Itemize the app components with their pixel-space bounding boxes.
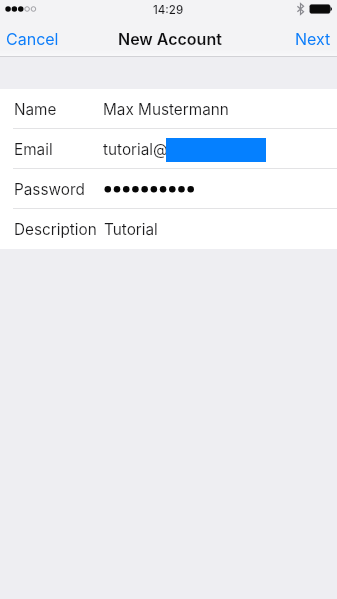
- button[interactable]: Description: [0, 209, 337, 249]
- button[interactable]: Name: [0, 89, 337, 129]
- other: Cellular signal strength: [0, 0, 60, 20]
- staticText: Tutorial: [104, 220, 158, 239]
- staticText: Next: [295, 29, 331, 48]
- button[interactable]: Email: [0, 129, 337, 169]
- other: Bluetooth and battery status: [277, 0, 337, 20]
- staticText: Email: [14, 140, 53, 159]
- staticText: Cancel: [6, 29, 59, 48]
- staticText: tutorial@: [103, 140, 168, 159]
- button[interactable]: Password: [0, 169, 337, 209]
- staticText: New Account: [118, 29, 222, 48]
- button[interactable]: Next: [285, 22, 337, 55]
- button[interactable]: Cancel: [0, 22, 69, 55]
- staticText: Name: [14, 100, 57, 119]
- staticText: Description: [14, 220, 97, 239]
- staticText: 14:29: [153, 3, 184, 17]
- staticText: Password: [14, 180, 85, 199]
- staticText: Max Mustermann: [103, 100, 229, 119]
